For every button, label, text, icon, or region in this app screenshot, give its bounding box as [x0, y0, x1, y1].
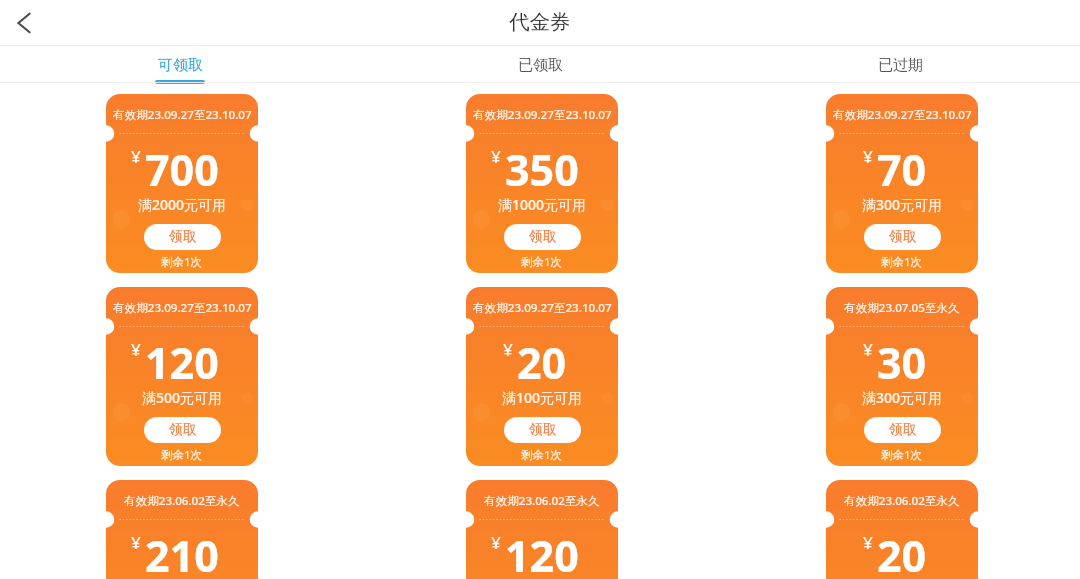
staticText: 有效期23.09.27至23.10.07 [833, 107, 972, 123]
staticText: 领取 [889, 228, 917, 246]
staticText: 剩余1次 [881, 447, 923, 463]
button[interactable]: 领取 [864, 224, 941, 250]
staticText: ¥ [863, 145, 873, 168]
button[interactable]: 有效期23.06.02至永久 [466, 480, 618, 579]
staticText: 剩余1次 [521, 254, 563, 270]
button[interactable]: 有效期23.09.27至23.10.07 [106, 94, 258, 273]
staticText: 领取 [169, 421, 197, 439]
staticText: 120 [145, 333, 219, 392]
staticText: 满2000元可用 [138, 195, 227, 214]
staticText: ¥ [131, 145, 141, 168]
staticText: 满300元可用 [862, 195, 943, 214]
button[interactable]: 领取 [144, 224, 221, 250]
staticText: 满100元可用 [502, 388, 583, 407]
staticText: 领取 [169, 228, 197, 246]
staticText: ¥ [491, 531, 501, 554]
staticText: ¥ [491, 145, 501, 168]
button[interactable]: 领取 [504, 417, 581, 443]
staticText: 有效期23.09.27至23.10.07 [113, 300, 252, 316]
staticText: 20 [517, 333, 567, 392]
staticText: 剩余1次 [161, 447, 203, 463]
button[interactable]: 可领取 [0, 46, 360, 83]
button[interactable]: 有效期23.07.05至永久 [826, 287, 978, 466]
button[interactable]: 领取 [144, 417, 221, 443]
button[interactable]: 已过期 [720, 46, 1080, 83]
button[interactable]: 有效期23.06.02至永久 [106, 480, 258, 579]
button[interactable]: 领取 [864, 417, 941, 443]
button[interactable]: 有效期23.09.27至23.10.07 [466, 94, 618, 273]
staticText: ¥ [131, 531, 141, 554]
staticText: 满1000元可用 [498, 195, 587, 214]
staticText: 30 [877, 333, 927, 392]
button[interactable]: 已领取 [360, 46, 720, 83]
staticText: 剩余1次 [881, 254, 923, 270]
staticText: 有效期23.09.27至23.10.07 [473, 107, 612, 123]
staticText: 满300元可用 [862, 388, 943, 407]
staticText: 700 [145, 140, 219, 199]
staticText: 有效期23.07.05至永久 [844, 300, 960, 316]
staticText: 350 [505, 140, 579, 199]
staticText: 剩余1次 [521, 447, 563, 463]
staticText: 已领取 [518, 56, 563, 75]
staticText: 已过期 [878, 56, 923, 75]
staticText: 有效期23.06.02至永久 [124, 493, 240, 509]
staticText: 有效期23.06.02至永久 [844, 493, 960, 509]
staticText: 有效期23.09.27至23.10.07 [113, 107, 252, 123]
staticText: 领取 [529, 421, 557, 439]
button[interactable]: 有效期23.09.27至23.10.07 [466, 287, 618, 466]
button[interactable]: 有效期23.06.02至永久 [826, 480, 978, 579]
staticText: 代金券 [509, 9, 571, 35]
button[interactable]: 有效期23.09.27至23.10.07 [106, 287, 258, 466]
staticText: ¥ [131, 338, 141, 361]
staticText: 可领取 [158, 56, 203, 75]
staticText: 有效期23.09.27至23.10.07 [473, 300, 612, 316]
button[interactable]: Back [0, 0, 48, 46]
staticText: ¥ [863, 531, 873, 554]
staticText: 剩余1次 [161, 254, 203, 270]
button[interactable]: 有效期23.09.27至23.10.07 [826, 94, 978, 273]
staticText: ¥ [863, 338, 873, 361]
staticText: 70 [877, 140, 927, 199]
button[interactable]: 领取 [504, 224, 581, 250]
staticText: 满500元可用 [142, 388, 223, 407]
staticText: 120 [505, 526, 579, 579]
staticText: 20 [877, 526, 927, 579]
staticText: 领取 [889, 421, 917, 439]
staticText: 有效期23.06.02至永久 [484, 493, 600, 509]
staticText: ¥ [503, 338, 513, 361]
staticText: 210 [145, 526, 219, 579]
staticText: 领取 [529, 228, 557, 246]
